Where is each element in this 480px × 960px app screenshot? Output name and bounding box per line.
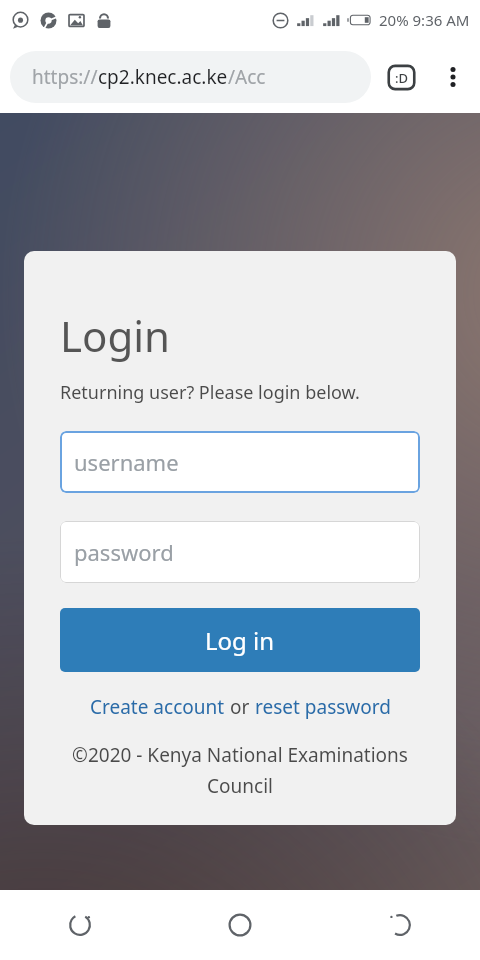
staticText: /Acc [228, 64, 266, 90]
staticText: ©2020 - Kenya National Examinations Coun… [60, 742, 420, 799]
staticText: Log in [205, 624, 275, 657]
button[interactable]: username [60, 431, 420, 493]
button[interactable]: reset password [255, 694, 391, 720]
staticText: Create account [90, 694, 225, 720]
button[interactable]: https:// [10, 51, 371, 103]
staticText: username [74, 447, 179, 477]
button[interactable]: Log in [60, 608, 420, 672]
staticText: Returning user? Please login below. [60, 380, 360, 405]
staticText: :D [395, 69, 409, 87]
button[interactable]: Tabs [385, 61, 418, 94]
staticText: or [225, 694, 255, 720]
staticText: 20% 9:36 AM [379, 10, 470, 30]
staticText: Login [60, 307, 171, 364]
staticText: https:// [32, 64, 98, 90]
staticText: cp2.knec.ac.ke [98, 64, 228, 90]
button[interactable]: Back [320, 890, 480, 960]
button[interactable]: password [60, 521, 420, 583]
button[interactable]: Create account [90, 694, 225, 720]
button[interactable]: Home [160, 890, 320, 960]
staticText: password [74, 537, 174, 567]
button[interactable]: Recents [0, 890, 160, 960]
staticText: reset password [255, 694, 391, 720]
button[interactable]: More options [436, 60, 470, 94]
